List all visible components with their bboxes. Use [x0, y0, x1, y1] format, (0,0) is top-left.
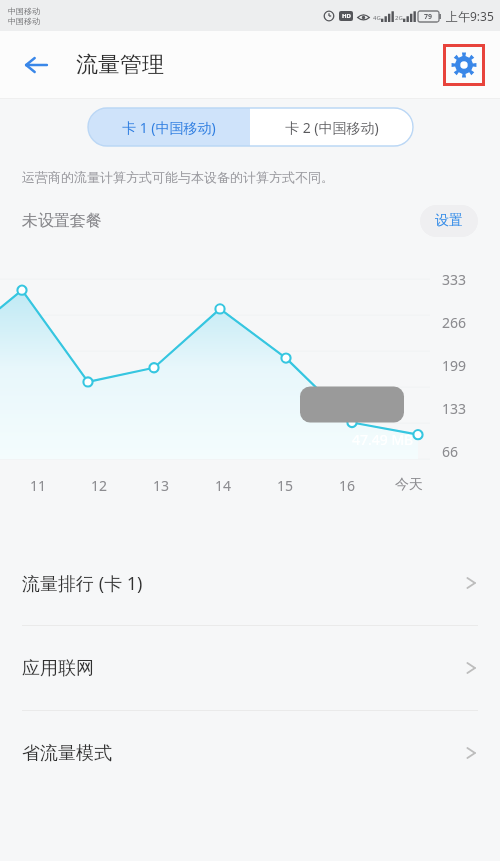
staticText: 16 — [339, 476, 356, 495]
staticText: 卡 1 (中国移动) — [122, 118, 216, 137]
button[interactable]: 设置 — [420, 205, 478, 237]
button[interactable]: 卡 1 (中国移动) — [88, 108, 250, 146]
staticText: 15 — [277, 476, 294, 495]
staticText: 2G — [395, 14, 403, 22]
staticText: 13 — [153, 476, 170, 495]
staticText: 上午9:35 — [446, 8, 494, 24]
staticText: 133 — [441, 399, 466, 418]
staticText: 66 — [441, 442, 458, 461]
staticText: 199 — [441, 356, 466, 375]
button[interactable]: Back — [14, 43, 58, 87]
staticText: 333 — [441, 270, 466, 289]
button[interactable]: 卡 2 (中国移动) — [250, 108, 413, 146]
staticText: 流量排行 (卡 1) — [22, 571, 143, 596]
staticText: 今天 — [395, 476, 423, 494]
staticText: 11 — [30, 476, 47, 495]
button[interactable]: 省流量模式 — [0, 711, 500, 795]
staticText: 12 — [91, 476, 108, 495]
staticText: 4G — [373, 14, 381, 22]
button[interactable]: 流量排行 (卡 1) — [0, 541, 500, 625]
staticText: 未设置套餐 — [22, 211, 102, 231]
staticText: 中国移动 — [8, 16, 40, 26]
button[interactable]: 应用联网 — [0, 626, 500, 710]
staticText: HD — [342, 12, 351, 20]
staticText: 流量管理 — [76, 51, 164, 79]
staticText: 省流量模式 — [22, 742, 112, 765]
staticText: 14 — [215, 476, 232, 495]
staticText: 卡 2 (中国移动) — [285, 118, 379, 137]
staticText: 运营商的流量计算方式可能与本设备的计算方式不同。 — [22, 169, 334, 185]
staticText: 中国移动 — [8, 6, 40, 16]
staticText: 266 — [441, 313, 466, 332]
staticText: 应用联网 — [22, 657, 94, 680]
staticText: 设置 — [435, 212, 463, 230]
button[interactable]: Settings — [443, 44, 485, 86]
staticText: 79 — [424, 12, 433, 22]
staticText: 47.49 MB — [352, 430, 414, 449]
